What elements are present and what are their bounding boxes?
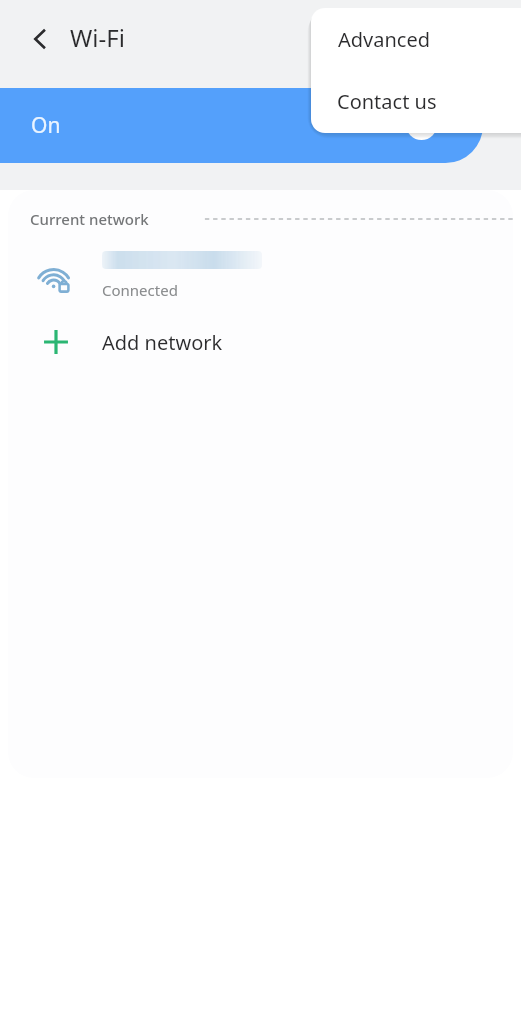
staticText: On xyxy=(31,111,61,140)
staticText: Contact us xyxy=(337,88,437,115)
button[interactable]: Advanced xyxy=(311,8,521,70)
button[interactable]: Back xyxy=(18,16,64,62)
button[interactable]: Add network xyxy=(8,314,513,370)
staticText: Advanced xyxy=(338,26,430,53)
button[interactable]: On xyxy=(0,88,483,163)
staticText: Add network xyxy=(102,329,223,356)
button[interactable]: Contact us xyxy=(311,70,521,133)
staticText: Wi-Fi xyxy=(70,21,125,54)
button[interactable]: Connected xyxy=(8,242,513,310)
staticText: Connected xyxy=(102,280,178,300)
staticText: Current network xyxy=(30,209,149,229)
